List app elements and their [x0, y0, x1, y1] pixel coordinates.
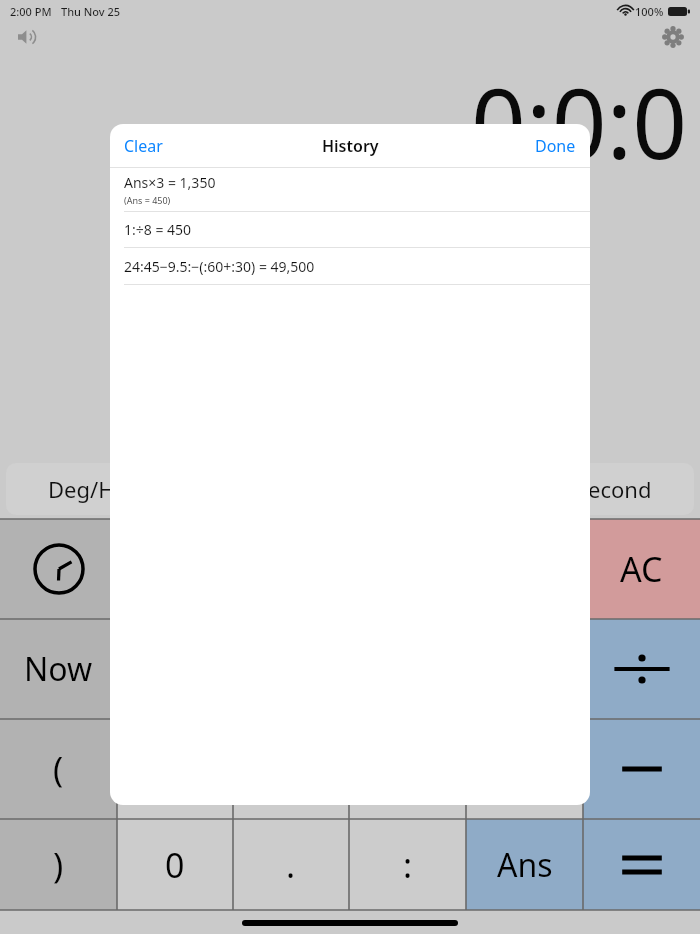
- button[interactable]: 2: [233, 719, 349, 819]
- button[interactable]: Deg/Hour: [44, 470, 155, 508]
- button[interactable]: (: [0, 719, 117, 819]
- staticText: Ans×3 = 1,350: [124, 173, 216, 192]
- staticText: Ans: [497, 843, 553, 887]
- button[interactable]: Settings: [656, 20, 690, 54]
- staticText: 1:÷8 = 450: [124, 220, 192, 239]
- staticText: (Ans = 450): [124, 194, 171, 206]
- button[interactable]: Done: [527, 129, 584, 163]
- button[interactable]: Ans: [466, 819, 583, 910]
- staticText: Thu Nov 25: [61, 4, 121, 19]
- button[interactable]: Divide: [583, 619, 700, 719]
- button[interactable]: :: [349, 819, 466, 910]
- button[interactable]: 1: [117, 719, 233, 819]
- button[interactable]: 24:45−9.5:−(:60+:30) = 49,500: [110, 248, 590, 284]
- button[interactable]: .: [233, 819, 349, 910]
- staticText: (: [53, 746, 64, 792]
- button[interactable]: Second: [572, 470, 656, 508]
- button[interactable]: Now: [0, 619, 117, 719]
- staticText: .: [286, 842, 296, 888]
- staticText: Deg/Hour: [48, 474, 151, 504]
- staticText: ): [53, 842, 64, 888]
- staticText: 100%: [635, 4, 664, 19]
- staticText: 0: [165, 842, 185, 888]
- button[interactable]: AC: [583, 519, 700, 619]
- staticText: 2:00 PM: [10, 4, 52, 19]
- button[interactable]: 3: [349, 719, 466, 819]
- button[interactable]: Sound: [10, 21, 42, 53]
- button[interactable]: ±: [466, 719, 583, 819]
- staticText: AC: [620, 546, 663, 592]
- button[interactable]: Minus: [583, 719, 700, 819]
- button[interactable]: 1:÷8 = 450: [110, 212, 590, 247]
- button[interactable]: Clear: [116, 129, 171, 163]
- staticText: Second: [576, 474, 652, 504]
- staticText: 0:0:0: [471, 56, 688, 187]
- button[interactable]: 0: [117, 819, 233, 910]
- staticText: :: [403, 842, 413, 888]
- staticText: Done: [535, 135, 576, 157]
- staticText: Now: [24, 647, 93, 691]
- button[interactable]: Clock: [0, 519, 117, 619]
- button[interactable]: Equals: [583, 819, 700, 910]
- staticText: 24:45−9.5:−(:60+:30) = 49,500: [124, 257, 315, 276]
- staticText: History: [322, 135, 379, 157]
- button[interactable]: ): [0, 819, 117, 910]
- staticText: Clear: [124, 135, 163, 157]
- button[interactable]: Ans×3 = 1,350: [110, 168, 590, 211]
